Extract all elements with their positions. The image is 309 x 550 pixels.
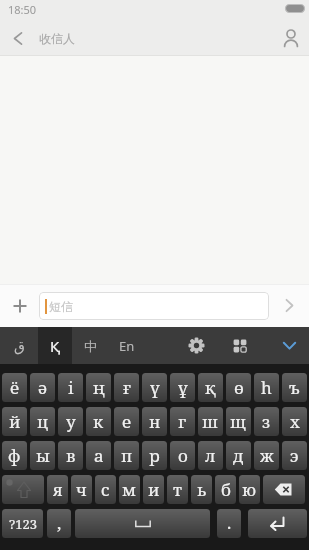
staticText: ё bbox=[10, 376, 20, 399]
staticText: л bbox=[205, 444, 216, 467]
staticText: 18:50 bbox=[8, 2, 37, 17]
button[interactable] bbox=[269, 327, 309, 364]
staticText: к bbox=[93, 410, 104, 433]
button[interactable]: о bbox=[170, 441, 195, 470]
button[interactable] bbox=[273, 20, 309, 56]
staticText: 短信 bbox=[49, 299, 73, 314]
staticText: и bbox=[148, 478, 160, 501]
button[interactable]: е bbox=[114, 407, 139, 436]
button[interactable]: п bbox=[114, 441, 139, 470]
button[interactable]: ш bbox=[198, 407, 223, 436]
button[interactable]: ц bbox=[30, 407, 55, 436]
button[interactable]: з bbox=[254, 407, 279, 436]
button[interactable]: р bbox=[142, 441, 167, 470]
button[interactable]: х bbox=[282, 407, 307, 436]
staticText: н bbox=[149, 410, 161, 433]
button[interactable]: й bbox=[2, 407, 27, 436]
button[interactable] bbox=[0, 284, 39, 327]
button[interactable] bbox=[218, 327, 262, 364]
staticText: г bbox=[178, 410, 187, 433]
button[interactable]: н bbox=[142, 407, 167, 436]
staticText: з bbox=[262, 410, 271, 433]
button[interactable]: б bbox=[215, 475, 236, 504]
button[interactable]: ұ bbox=[170, 373, 195, 402]
button[interactable] bbox=[248, 509, 307, 538]
staticText: р bbox=[149, 444, 160, 467]
button[interactable] bbox=[0, 20, 36, 56]
staticText: ?123 bbox=[9, 515, 37, 533]
button[interactable]: ч bbox=[71, 475, 92, 504]
button[interactable]: Қ bbox=[38, 327, 72, 364]
button[interactable]: ق bbox=[0, 327, 38, 364]
staticText: ф bbox=[8, 444, 21, 467]
button[interactable]: ь bbox=[191, 475, 212, 504]
button[interactable]: ф bbox=[2, 441, 27, 470]
button[interactable] bbox=[2, 475, 44, 504]
staticText: Қ bbox=[50, 336, 61, 356]
button[interactable]: г bbox=[170, 407, 195, 436]
button[interactable] bbox=[174, 327, 218, 364]
button[interactable]: ж bbox=[254, 441, 279, 470]
button[interactable] bbox=[269, 284, 309, 327]
button[interactable]: ң bbox=[86, 373, 111, 402]
staticText: ق bbox=[14, 338, 25, 354]
staticText: ғ bbox=[123, 376, 131, 399]
staticText: й bbox=[9, 410, 21, 433]
staticText: е bbox=[122, 410, 132, 433]
button[interactable]: э bbox=[282, 441, 307, 470]
staticText: қ bbox=[205, 376, 216, 399]
button[interactable]: л bbox=[198, 441, 223, 470]
button[interactable]: в bbox=[58, 441, 83, 470]
staticText: ы bbox=[36, 444, 50, 467]
button[interactable]: а bbox=[86, 441, 111, 470]
staticText: о bbox=[178, 444, 188, 467]
staticText: п bbox=[121, 444, 133, 467]
staticText: En bbox=[119, 337, 135, 355]
staticText: щ bbox=[230, 410, 247, 433]
button[interactable]: ё bbox=[2, 373, 27, 402]
staticText: һ bbox=[261, 376, 272, 399]
button[interactable]: с bbox=[95, 475, 116, 504]
staticText: ц bbox=[37, 410, 49, 433]
button[interactable]: 中 bbox=[72, 327, 108, 364]
staticText: д bbox=[233, 444, 244, 467]
staticText: м bbox=[122, 478, 137, 501]
staticText: ү bbox=[150, 376, 160, 399]
button[interactable]: ы bbox=[30, 441, 55, 470]
button[interactable]: 短信 bbox=[39, 292, 269, 320]
button[interactable]: ғ bbox=[114, 373, 139, 402]
button[interactable]: һ bbox=[254, 373, 279, 402]
button[interactable] bbox=[263, 475, 305, 504]
button[interactable]: ә bbox=[30, 373, 55, 402]
button[interactable]: . bbox=[217, 509, 241, 538]
button[interactable]: м bbox=[119, 475, 140, 504]
staticText: ю bbox=[242, 478, 257, 501]
button[interactable]: қ bbox=[198, 373, 223, 402]
button[interactable]: ү bbox=[142, 373, 167, 402]
button[interactable]: и bbox=[143, 475, 164, 504]
staticText: ш bbox=[202, 410, 219, 433]
button[interactable]: щ bbox=[226, 407, 251, 436]
staticText: э bbox=[290, 444, 299, 467]
staticText: б bbox=[221, 478, 231, 501]
button[interactable]: і bbox=[58, 373, 83, 402]
button[interactable]: ю bbox=[239, 475, 260, 504]
button[interactable]: ө bbox=[226, 373, 251, 402]
button[interactable]: у bbox=[58, 407, 83, 436]
button[interactable]: я bbox=[47, 475, 68, 504]
button[interactable]: т bbox=[167, 475, 188, 504]
staticText: а bbox=[94, 444, 104, 467]
button[interactable] bbox=[75, 509, 210, 538]
staticText: ұ bbox=[178, 376, 188, 399]
button[interactable]: ъ bbox=[282, 373, 307, 402]
button[interactable]: En bbox=[108, 327, 146, 364]
button[interactable]: , bbox=[47, 509, 71, 538]
staticText: , bbox=[57, 511, 62, 534]
staticText: ч bbox=[76, 478, 87, 501]
button[interactable]: к bbox=[86, 407, 111, 436]
button[interactable]: д bbox=[226, 441, 251, 470]
staticText: 中 bbox=[84, 338, 97, 354]
button[interactable]: ?123 bbox=[2, 509, 43, 538]
staticText: ө bbox=[234, 376, 244, 399]
staticText: у bbox=[66, 410, 76, 433]
